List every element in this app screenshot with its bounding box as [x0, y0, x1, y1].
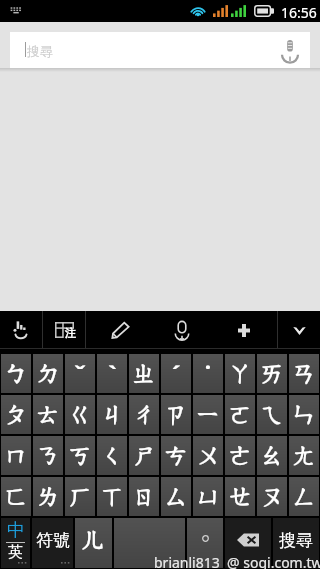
- staticText: ㄘ: [164, 441, 189, 471]
- staticText: ˊ: [172, 357, 181, 390]
- staticText: ㄕ: [132, 441, 157, 471]
- button[interactable]: ㄏ: [65, 477, 95, 516]
- staticText: ㄊ: [36, 400, 61, 430]
- staticText: ㄅ: [4, 359, 29, 389]
- button[interactable]: ㄉ: [33, 354, 63, 393]
- button[interactable]: Voice input: [154, 311, 210, 349]
- staticText: 16:56: [281, 3, 317, 22]
- button[interactable]: ㄖ: [129, 477, 159, 516]
- button[interactable]: Hide keyboard: [278, 311, 320, 349]
- button[interactable]: 搜尋: [10, 32, 310, 68]
- staticText: ㄦ: [81, 525, 106, 555]
- staticText: 搜尋: [27, 43, 53, 59]
- staticText: ㄇ: [4, 441, 29, 471]
- button[interactable]: ㄝ: [225, 477, 255, 516]
- button[interactable]: [187, 518, 223, 568]
- button[interactable]: ㄨ: [193, 436, 223, 475]
- button[interactable]: ㄦ: [75, 518, 112, 568]
- staticText: ㄎ: [68, 441, 93, 471]
- staticText: ㄠ: [260, 441, 285, 471]
- staticText: ㄑ: [100, 441, 125, 471]
- button[interactable]: ㄢ: [289, 354, 319, 393]
- button[interactable]: ㄒ: [97, 477, 127, 516]
- button[interactable]: ㄓ: [129, 354, 159, 393]
- button[interactable]: ㄆ: [1, 395, 31, 434]
- staticText: 符號: [36, 530, 70, 551]
- button[interactable]: ˊ: [161, 354, 191, 393]
- button[interactable]: ㄙ: [161, 477, 191, 516]
- button[interactable]: ㄡ: [257, 477, 287, 516]
- button[interactable]: ㄩ: [193, 477, 223, 516]
- staticText: ㄟ: [260, 400, 285, 430]
- button[interactable]: ㄌ: [33, 477, 63, 516]
- staticText: ㄨ: [196, 441, 221, 471]
- staticText: ㄖ: [132, 482, 157, 512]
- button[interactable]: Voice search: [277, 37, 303, 63]
- staticText: ˋ: [108, 357, 117, 390]
- button[interactable]: ㄗ: [161, 395, 191, 434]
- button[interactable]: ㄇ: [1, 436, 31, 475]
- button[interactable]: Edit: [86, 311, 154, 349]
- button[interactable]: ㄔ: [129, 395, 159, 434]
- staticText: ㄌ: [36, 482, 61, 512]
- button[interactable]: 中: [1, 518, 30, 568]
- button[interactable]: ㄜ: [225, 436, 255, 475]
- button[interactable]: ㄈ: [1, 477, 31, 516]
- staticText: ㄔ: [132, 400, 157, 430]
- button[interactable]: ˋ: [97, 354, 127, 393]
- button[interactable]: ㄥ: [289, 477, 319, 516]
- button[interactable]: Handwriting input: [0, 311, 42, 349]
- staticText: ㄙ: [164, 482, 189, 512]
- button[interactable]: ㄚ: [225, 354, 255, 393]
- button[interactable]: ㄞ: [257, 354, 287, 393]
- button[interactable]: ㄛ: [225, 395, 255, 434]
- button[interactable]: Keyboard layout: [43, 311, 85, 349]
- staticText: ㄝ: [228, 482, 253, 512]
- staticText: ㄒ: [100, 482, 125, 512]
- button[interactable]: 搜尋: [273, 518, 319, 568]
- staticText: ㄧ: [196, 400, 221, 430]
- button[interactable]: ㄟ: [257, 395, 287, 434]
- staticText: ㄏ: [68, 482, 93, 512]
- staticText: ㄈ: [4, 482, 29, 512]
- staticText: 注: [65, 326, 76, 340]
- button[interactable]: ㄐ: [97, 395, 127, 434]
- staticText: ㄋ: [36, 441, 61, 471]
- staticText: ㄢ: [292, 359, 317, 389]
- staticText: ㄜ: [228, 441, 253, 471]
- button[interactable]: ㄑ: [97, 436, 127, 475]
- button[interactable]: Backspace: [225, 518, 271, 568]
- staticText: ㄓ: [132, 359, 157, 389]
- button[interactable]: ㄋ: [33, 436, 63, 475]
- button[interactable]: ㄊ: [33, 395, 63, 434]
- button[interactable]: ㄅ: [1, 354, 31, 393]
- staticText: ㄤ: [292, 441, 317, 471]
- button[interactable]: ˇ: [65, 354, 95, 393]
- button[interactable]: ㄤ: [289, 436, 319, 475]
- staticText: ㄛ: [228, 400, 253, 430]
- button[interactable]: ㄣ: [289, 395, 319, 434]
- button[interactable]: ㄘ: [161, 436, 191, 475]
- button[interactable]: ㄎ: [65, 436, 95, 475]
- button[interactable]: ㄧ: [193, 395, 223, 434]
- button[interactable]: ˙: [193, 354, 223, 393]
- staticText: ㄗ: [164, 400, 189, 430]
- staticText: ㄡ: [260, 482, 285, 512]
- staticText: ㄉ: [36, 359, 61, 389]
- button[interactable]: 符號: [32, 518, 73, 568]
- staticText: 中: [7, 519, 25, 542]
- staticText: 英: [8, 543, 23, 562]
- button[interactable]: ㄠ: [257, 436, 287, 475]
- staticText: ˙: [205, 357, 211, 390]
- staticText: ㄞ: [260, 359, 285, 389]
- button[interactable]: ㄍ: [65, 395, 95, 434]
- staticText: ˇ: [74, 357, 87, 390]
- staticText: ㄥ: [292, 482, 317, 512]
- button[interactable]: ㄕ: [129, 436, 159, 475]
- staticText: ㄚ: [228, 359, 253, 389]
- button[interactable]: Space: [114, 518, 185, 568]
- staticText: ㄩ: [196, 482, 221, 512]
- staticText: ㄍ: [68, 400, 93, 430]
- button[interactable]: Add: [210, 311, 277, 349]
- staticText: ㄣ: [292, 400, 317, 430]
